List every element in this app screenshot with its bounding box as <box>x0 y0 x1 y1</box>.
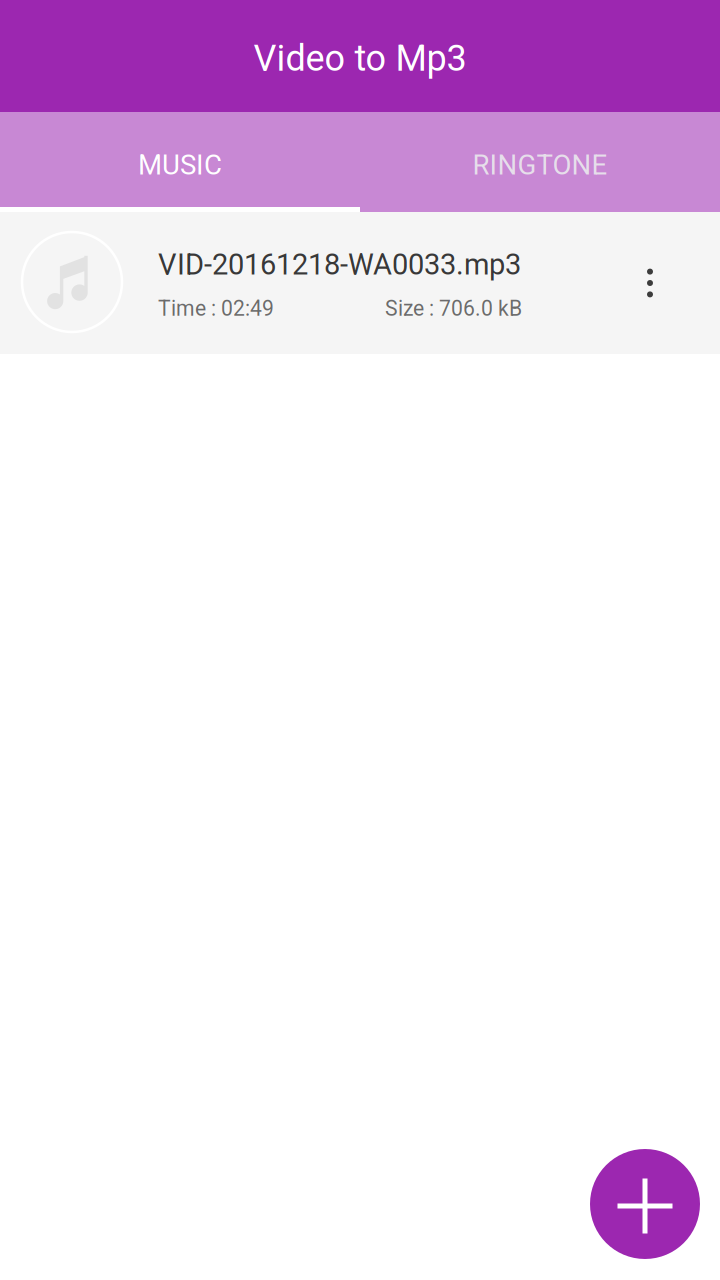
staticText: RINGTONE <box>472 149 607 181</box>
button[interactable]: RINGTONE <box>360 112 720 212</box>
button[interactable]: VID-20161218-WA0033.mp3 <box>0 212 720 354</box>
button[interactable]: MUSIC <box>0 112 360 212</box>
staticText: Size : 706.0 kB <box>385 296 522 321</box>
button[interactable]: More options <box>626 259 674 307</box>
button[interactable]: Add <box>590 1149 700 1259</box>
staticText: MUSIC <box>138 149 222 181</box>
staticText: Time : 02:49 <box>158 296 274 321</box>
staticText: VID-20161218-WA0033.mp3 <box>158 247 521 282</box>
staticText: Video to Mp3 <box>253 37 466 80</box>
